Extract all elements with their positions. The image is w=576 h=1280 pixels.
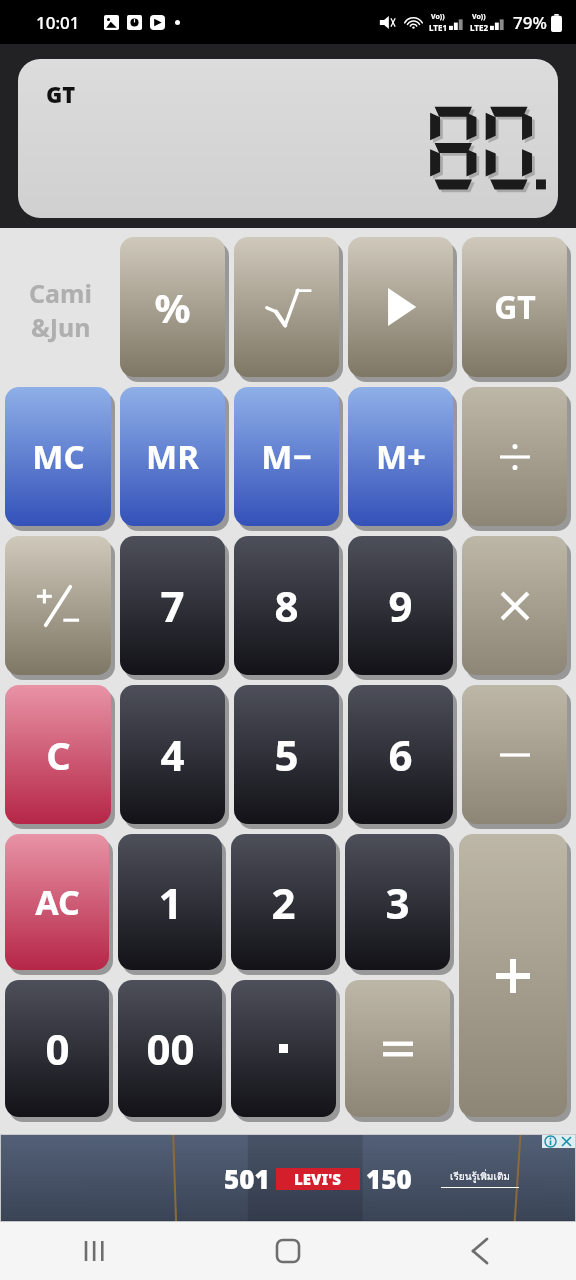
button[interactable]: Plus: [459, 834, 567, 1117]
staticText: 3: [385, 874, 410, 931]
button[interactable]: 8: [234, 536, 339, 675]
staticText: 79%: [513, 11, 547, 34]
other: Plus: [496, 959, 530, 993]
button[interactable]: Home: [192, 1222, 384, 1280]
button[interactable]: Decimal point: [231, 980, 336, 1117]
staticText: 501: [224, 1161, 270, 1196]
staticText: Vo)): [431, 12, 445, 22]
button[interactable]: 9: [348, 536, 453, 675]
staticText: 00: [146, 1020, 195, 1077]
staticText: Cami: [29, 276, 92, 310]
staticText: Vo)): [472, 12, 486, 22]
other: Equals: [383, 1038, 413, 1060]
button[interactable]: C: [5, 685, 111, 824]
staticText: 7: [160, 577, 185, 634]
staticText: C: [46, 729, 71, 781]
staticText: 0: [45, 1020, 70, 1077]
button[interactable]: Back: [384, 1222, 576, 1280]
staticText: %: [154, 280, 191, 334]
staticText: 2: [271, 874, 296, 931]
button[interactable]: 6: [348, 685, 453, 824]
staticText: GT: [46, 79, 76, 109]
other: Ad info: [544, 1135, 557, 1148]
button[interactable]: Close ad: [560, 1135, 573, 1148]
button[interactable]: %: [120, 237, 225, 377]
other: Minus: [500, 748, 530, 762]
button[interactable]: 0: [5, 980, 109, 1117]
staticText: 150: [366, 1161, 412, 1196]
staticText: MC: [32, 434, 85, 479]
staticText: 1: [158, 874, 183, 931]
button[interactable]: MC: [5, 387, 111, 526]
staticText: M−: [261, 434, 312, 479]
button[interactable]: GT: [462, 237, 567, 377]
staticText: 5: [274, 726, 299, 783]
staticText: 6: [388, 726, 413, 783]
staticText: &Jun: [31, 310, 91, 344]
button[interactable]: AC: [5, 834, 109, 970]
button[interactable]: 5: [234, 685, 339, 824]
button[interactable]: Multiply: [462, 536, 567, 675]
staticText: MR: [146, 434, 199, 479]
staticText: LEVI'S: [294, 1169, 342, 1189]
other: Square root: [264, 287, 310, 327]
button[interactable]: 00: [118, 980, 222, 1117]
button[interactable]: 3: [345, 834, 450, 970]
staticText: 4: [160, 726, 185, 783]
button[interactable]: M−: [234, 387, 339, 526]
button[interactable]: 7: [120, 536, 225, 675]
other: Plus minus: [36, 585, 80, 627]
staticText: เรียนรู้เพิ่มเติม: [450, 1169, 510, 1185]
button[interactable]: Plus minus: [5, 536, 111, 675]
other: Multiply: [502, 593, 528, 619]
staticText: 8: [274, 577, 299, 634]
staticText: M+: [376, 434, 426, 479]
button[interactable]: 4: [120, 685, 225, 824]
other: Backspace: [384, 288, 418, 326]
button[interactable]: MR: [120, 387, 225, 526]
button[interactable]: 1: [118, 834, 222, 970]
button[interactable]: Divide: [462, 387, 567, 526]
staticText: AC: [35, 879, 80, 925]
button[interactable]: Square root: [234, 237, 339, 377]
button[interactable]: Equals: [345, 980, 450, 1117]
staticText: GT: [494, 285, 536, 329]
button[interactable]: 2: [231, 834, 336, 970]
staticText: LTE1: [429, 22, 447, 33]
button[interactable]: M+: [348, 387, 453, 526]
button[interactable]: Minus: [462, 685, 567, 824]
other: Divide: [500, 441, 530, 473]
button[interactable]: Backspace: [348, 237, 453, 377]
button[interactable]: Recent apps: [0, 1222, 192, 1280]
staticText: 10:01: [36, 11, 80, 34]
staticText: LTE2: [470, 22, 488, 33]
staticText: 9: [388, 577, 413, 634]
button[interactable]: 501: [1, 1135, 575, 1221]
